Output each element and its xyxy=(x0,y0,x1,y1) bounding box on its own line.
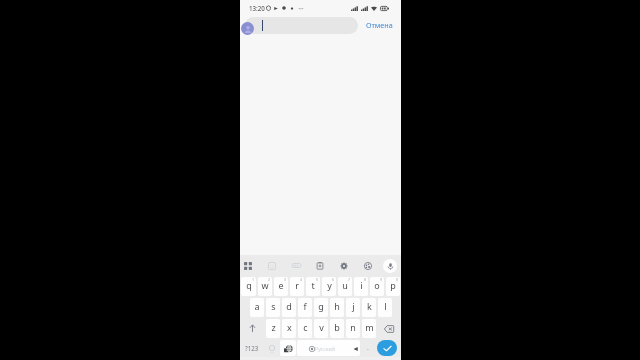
button[interactable]: Account xyxy=(241,22,254,35)
staticText: u xyxy=(342,279,348,291)
button[interactable]: Enter xyxy=(377,340,397,356)
button[interactable]: c xyxy=(298,319,312,338)
staticText: p xyxy=(390,279,396,291)
button[interactable]: d xyxy=(282,298,296,317)
button[interactable]: m xyxy=(362,319,376,338)
staticText: o xyxy=(374,279,380,291)
staticText: z xyxy=(271,321,276,333)
staticText: 6 xyxy=(332,277,335,282)
button[interactable]: o xyxy=(370,277,384,296)
staticText: k xyxy=(367,300,372,312)
staticText: r xyxy=(295,279,299,291)
button[interactable]: ?123 xyxy=(240,339,264,357)
staticText: ?123 xyxy=(245,344,259,352)
button[interactable]: g xyxy=(314,298,328,317)
staticText: 0 xyxy=(396,277,399,282)
button[interactable]: GIF xyxy=(284,255,308,276)
button[interactable]: f xyxy=(298,298,312,317)
staticText: m xyxy=(365,321,374,333)
button[interactable]: l xyxy=(378,298,392,317)
staticText: Русский xyxy=(315,345,335,352)
staticText: 9 xyxy=(380,277,383,282)
button[interactable]: q xyxy=(241,277,256,296)
staticText: s xyxy=(271,300,276,312)
button[interactable]: r xyxy=(290,277,304,296)
staticText: t xyxy=(311,279,315,291)
staticText: 5 xyxy=(316,277,319,282)
staticText: 8 xyxy=(364,277,367,282)
staticText: 1 xyxy=(252,277,255,282)
button[interactable]: Apps xyxy=(236,255,260,276)
staticText: n xyxy=(350,321,356,333)
staticText: j xyxy=(352,300,355,312)
button[interactable]: v xyxy=(314,319,328,338)
button[interactable]: Voice input xyxy=(381,255,398,276)
button[interactable]: n xyxy=(346,319,360,338)
staticText: 4 xyxy=(300,277,303,282)
button[interactable]: Settings xyxy=(332,255,356,276)
staticText: f xyxy=(303,300,307,312)
staticText: a xyxy=(254,300,260,312)
staticText: g xyxy=(318,300,324,312)
staticText: i xyxy=(360,279,363,291)
staticText: b xyxy=(334,321,340,333)
button[interactable]: Shift xyxy=(240,318,265,339)
button[interactable]: i xyxy=(354,277,368,296)
staticText: c xyxy=(303,321,308,333)
button[interactable]: s xyxy=(266,298,280,317)
button[interactable]: Отмена xyxy=(366,14,393,36)
staticText: 3 xyxy=(284,277,287,282)
button[interactable]: Emoji xyxy=(264,339,280,357)
button[interactable]: e xyxy=(274,277,288,296)
button[interactable]: w xyxy=(258,277,272,296)
staticText: 7 xyxy=(348,277,351,282)
button[interactable]: y xyxy=(322,277,336,296)
button[interactable]: u xyxy=(338,277,352,296)
staticText: d xyxy=(286,300,292,312)
button[interactable]: Clipboard xyxy=(308,255,332,276)
button[interactable]: t xyxy=(306,277,320,296)
staticText: w xyxy=(261,279,269,291)
staticText: v xyxy=(319,321,324,333)
staticText: x xyxy=(287,321,292,333)
button[interactable]: h xyxy=(330,298,344,317)
button[interactable]: Theme xyxy=(356,255,380,276)
staticText: l xyxy=(384,300,387,312)
staticText: q xyxy=(246,279,252,291)
button[interactable]: p xyxy=(386,277,400,296)
button[interactable]: Stickers xyxy=(260,255,284,276)
button[interactable]: Русский xyxy=(297,340,360,356)
button[interactable]: a xyxy=(250,298,264,317)
button[interactable]: Change language xyxy=(280,340,296,356)
button[interactable]: z xyxy=(266,319,280,338)
button[interactable]: j xyxy=(346,298,360,317)
button[interactable]: b xyxy=(330,319,344,338)
staticText: y xyxy=(327,279,332,291)
staticText: . xyxy=(367,343,369,353)
staticText: e xyxy=(278,279,284,291)
button[interactable]: k xyxy=(362,298,376,317)
button[interactable]: Backspace xyxy=(377,318,401,339)
button[interactable] xyxy=(245,17,358,34)
staticText: 2 xyxy=(268,277,271,282)
staticText: 13:20 xyxy=(249,4,265,12)
button[interactable]: x xyxy=(282,319,296,338)
staticText: Отмена xyxy=(366,20,393,30)
staticText: h xyxy=(334,300,340,312)
